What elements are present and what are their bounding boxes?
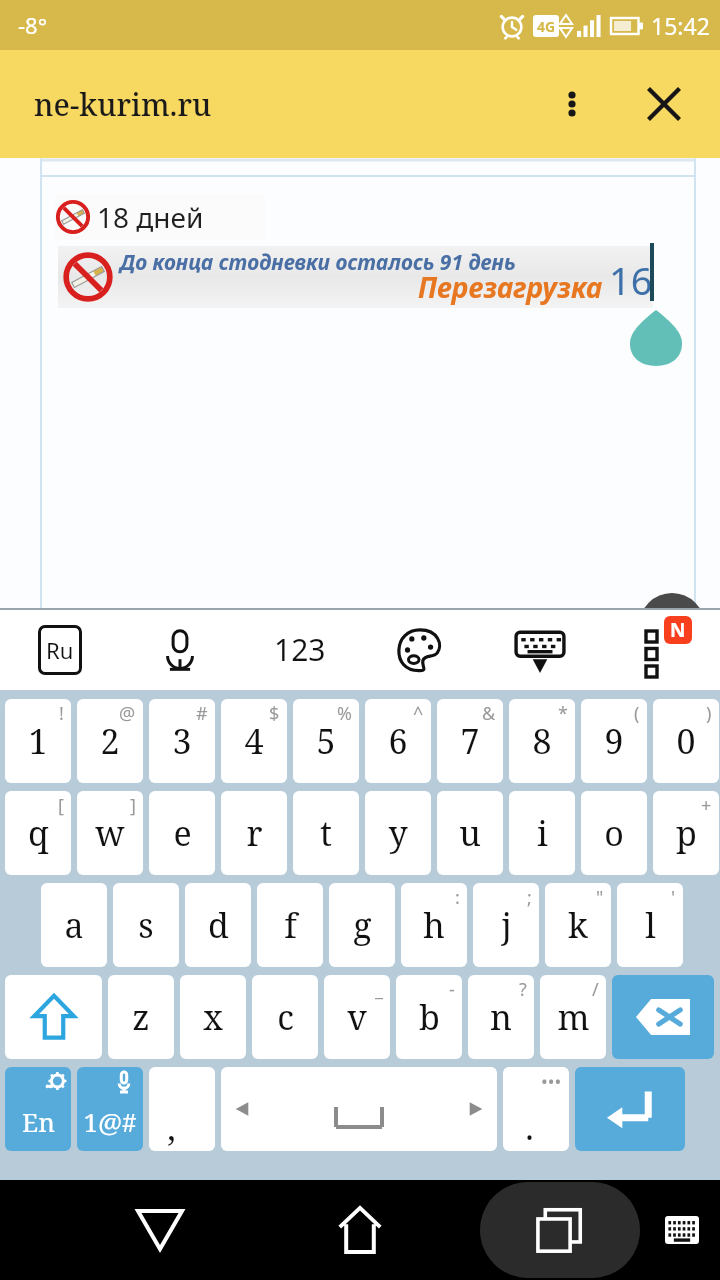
staticText: ••• <box>541 1069 562 1094</box>
button[interactable]: x <box>180 975 246 1059</box>
button[interactable]: # <box>149 699 215 783</box>
button[interactable]: Voice input <box>120 609 240 690</box>
button[interactable]: Switch keyboard <box>652 1200 712 1260</box>
button[interactable]: До конца стодневки осталось 91 день <box>58 246 653 308</box>
button[interactable]: Themes <box>360 609 480 690</box>
button[interactable]: % <box>293 699 359 783</box>
button[interactable]: Close <box>634 74 694 134</box>
button[interactable]: [ <box>5 791 71 875</box>
button[interactable]: u <box>437 791 503 875</box>
staticText: f <box>284 902 297 948</box>
button[interactable]: ' <box>617 883 683 967</box>
staticText: 8 <box>532 718 552 764</box>
staticText: 15:42 <box>651 10 710 41</box>
button[interactable]: Space <box>221 1067 497 1151</box>
button[interactable]: More <box>600 609 720 690</box>
staticText: k <box>568 902 588 948</box>
button[interactable]: Backspace <box>612 975 714 1059</box>
staticText: p <box>676 810 697 856</box>
staticText: 3 <box>172 718 192 764</box>
staticText: h <box>423 902 445 948</box>
button[interactable]: & <box>437 699 503 783</box>
staticText: En <box>22 1104 55 1139</box>
staticText: v <box>347 994 367 1040</box>
staticText: q <box>28 810 49 856</box>
staticText: ! <box>59 701 64 726</box>
button[interactable]: d <box>185 883 251 967</box>
button[interactable]: / <box>540 975 606 1059</box>
staticText: - <box>449 977 455 1002</box>
button[interactable]: : <box>401 883 467 967</box>
staticText: t <box>320 810 332 856</box>
button[interactable]: Language Ru <box>0 609 120 690</box>
button[interactable]: o <box>581 791 647 875</box>
button[interactable]: " <box>545 883 611 967</box>
staticText: s <box>138 902 154 948</box>
staticText: 2 <box>100 718 120 764</box>
staticText: _ <box>375 977 383 1002</box>
staticText: i <box>537 810 548 856</box>
button[interactable]: ! <box>5 699 71 783</box>
staticText: / <box>592 977 599 1002</box>
button[interactable]: s <box>113 883 179 967</box>
staticText: % <box>337 701 352 726</box>
button[interactable]: * <box>509 699 575 783</box>
staticText: N <box>670 617 686 643</box>
staticText: 16 <box>609 254 653 306</box>
staticText: ) <box>706 701 712 726</box>
button[interactable]: $ <box>221 699 287 783</box>
staticText: ? <box>519 977 527 1002</box>
button[interactable]: Enter <box>575 1067 685 1151</box>
button[interactable]: r <box>221 791 287 875</box>
button[interactable]: ? <box>468 975 534 1059</box>
staticText: 123 <box>274 629 326 670</box>
button[interactable]: _ <box>324 975 390 1059</box>
staticText: . <box>525 1104 534 1150</box>
staticText: $ <box>269 701 280 726</box>
button[interactable]: Scroll to top <box>639 593 705 659</box>
button[interactable]: ; <box>473 883 539 967</box>
staticText: w <box>95 810 125 856</box>
button[interactable]: ••• <box>503 1067 569 1151</box>
staticText: " <box>596 885 604 910</box>
button[interactable]: c <box>252 975 318 1059</box>
staticText: 18 дней <box>97 198 204 236</box>
staticText: * <box>558 701 568 726</box>
button[interactable]: ] <box>77 791 143 875</box>
button[interactable]: - <box>396 975 462 1059</box>
staticText: 4 <box>244 718 264 764</box>
button[interactable]: Recent apps <box>480 1182 640 1278</box>
button[interactable]: g <box>329 883 395 967</box>
button[interactable]: i <box>509 791 575 875</box>
staticText: e <box>173 810 192 856</box>
staticText: [ <box>58 793 64 818</box>
staticText: z <box>132 994 150 1040</box>
button[interactable]: a <box>41 883 107 967</box>
button[interactable]: + <box>653 791 719 875</box>
staticText: j <box>501 902 512 948</box>
button[interactable]: Hide keyboard <box>120 1190 200 1270</box>
button[interactable]: Shift <box>5 975 102 1059</box>
button[interactable]: ( <box>581 699 647 783</box>
button[interactable]: ) <box>653 699 719 783</box>
button[interactable]: @ <box>77 699 143 783</box>
button[interactable]: y <box>365 791 431 875</box>
button[interactable]: ^ <box>365 699 431 783</box>
button[interactable]: e <box>149 791 215 875</box>
button[interactable]: Numbers <box>240 609 360 690</box>
button[interactable]: , <box>149 1067 215 1151</box>
staticText: : <box>455 885 460 910</box>
button[interactable]: En <box>5 1067 71 1151</box>
button[interactable]: t <box>293 791 359 875</box>
button[interactable]: z <box>108 975 174 1059</box>
staticText: o <box>604 810 624 856</box>
button[interactable]: f <box>257 883 323 967</box>
staticText: ^ <box>413 701 424 726</box>
staticText: # <box>196 701 208 726</box>
staticText: + <box>701 793 712 818</box>
button[interactable]: More options <box>544 76 600 132</box>
button[interactable]: Hide keyboard <box>480 609 600 690</box>
button[interactable]: Home <box>320 1190 400 1270</box>
staticText: До конца стодневки осталось 91 день <box>120 248 516 277</box>
button[interactable]: 1@# <box>77 1067 143 1151</box>
